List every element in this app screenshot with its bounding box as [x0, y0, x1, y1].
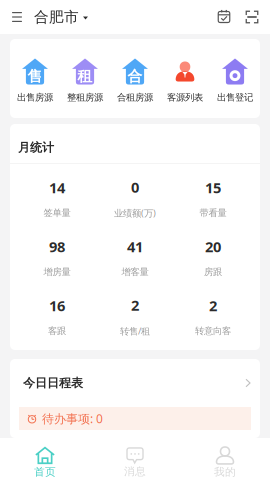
staticText: 2 — [209, 296, 217, 315]
staticText: 月统计 — [18, 140, 54, 155]
staticText: 增客量 — [121, 266, 148, 278]
staticText: 14 — [49, 178, 65, 197]
staticText: 41 — [127, 237, 143, 256]
staticText: 合租房源 — [117, 92, 153, 103]
staticText: 2 — [131, 295, 139, 315]
staticText: 客源列表 — [167, 92, 203, 103]
staticText: 带看量 — [199, 207, 226, 219]
staticText: 增房量 — [43, 266, 70, 278]
button[interactable]: 客源列表 — [160, 58, 210, 101]
staticText: 98 — [49, 237, 65, 256]
staticText: 转售/租 — [120, 325, 150, 337]
button[interactable]: Scan — [238, 0, 266, 34]
button[interactable]: 今日日程表 — [10, 359, 260, 407]
staticText: 房跟 — [204, 266, 222, 278]
staticText: 合肥市 — [34, 8, 79, 26]
staticText: 业绩额(万) — [114, 207, 156, 219]
staticText: 出售登记 — [217, 92, 253, 103]
staticText: 售 — [27, 67, 42, 85]
staticText: 租 — [77, 67, 92, 85]
button[interactable]: 租 — [60, 58, 110, 101]
button[interactable]: 消息 — [90, 438, 180, 480]
button[interactable]: Menu — [0, 0, 34, 34]
staticText: 0 — [131, 177, 139, 197]
staticText: 我的 — [214, 465, 236, 478]
button[interactable]: 售 — [10, 58, 60, 101]
staticText: 整租房源 — [67, 92, 103, 103]
staticText: 首页 — [34, 465, 56, 478]
staticText: 今日日程表 — [23, 376, 83, 390]
staticText: 消息 — [124, 465, 146, 478]
button[interactable]: 合 — [110, 58, 160, 101]
staticText: 20 — [205, 237, 221, 256]
button[interactable]: Calendar — [210, 0, 238, 34]
button[interactable]: 合肥市 — [34, 0, 88, 34]
button[interactable]: 首页 — [0, 437, 90, 480]
staticText: 合 — [127, 67, 142, 85]
button[interactable]: 出售登记 — [210, 58, 260, 101]
staticText: 出售房源 — [17, 92, 53, 103]
button[interactable]: 我的 — [180, 437, 270, 480]
staticText: 签单量 — [43, 207, 70, 219]
staticText: 15 — [205, 178, 221, 197]
staticText: 16 — [49, 296, 65, 315]
staticText: 待办事项: 0 — [42, 410, 103, 426]
staticText: 转意向客 — [195, 325, 231, 337]
staticText: 客跟 — [48, 325, 66, 337]
